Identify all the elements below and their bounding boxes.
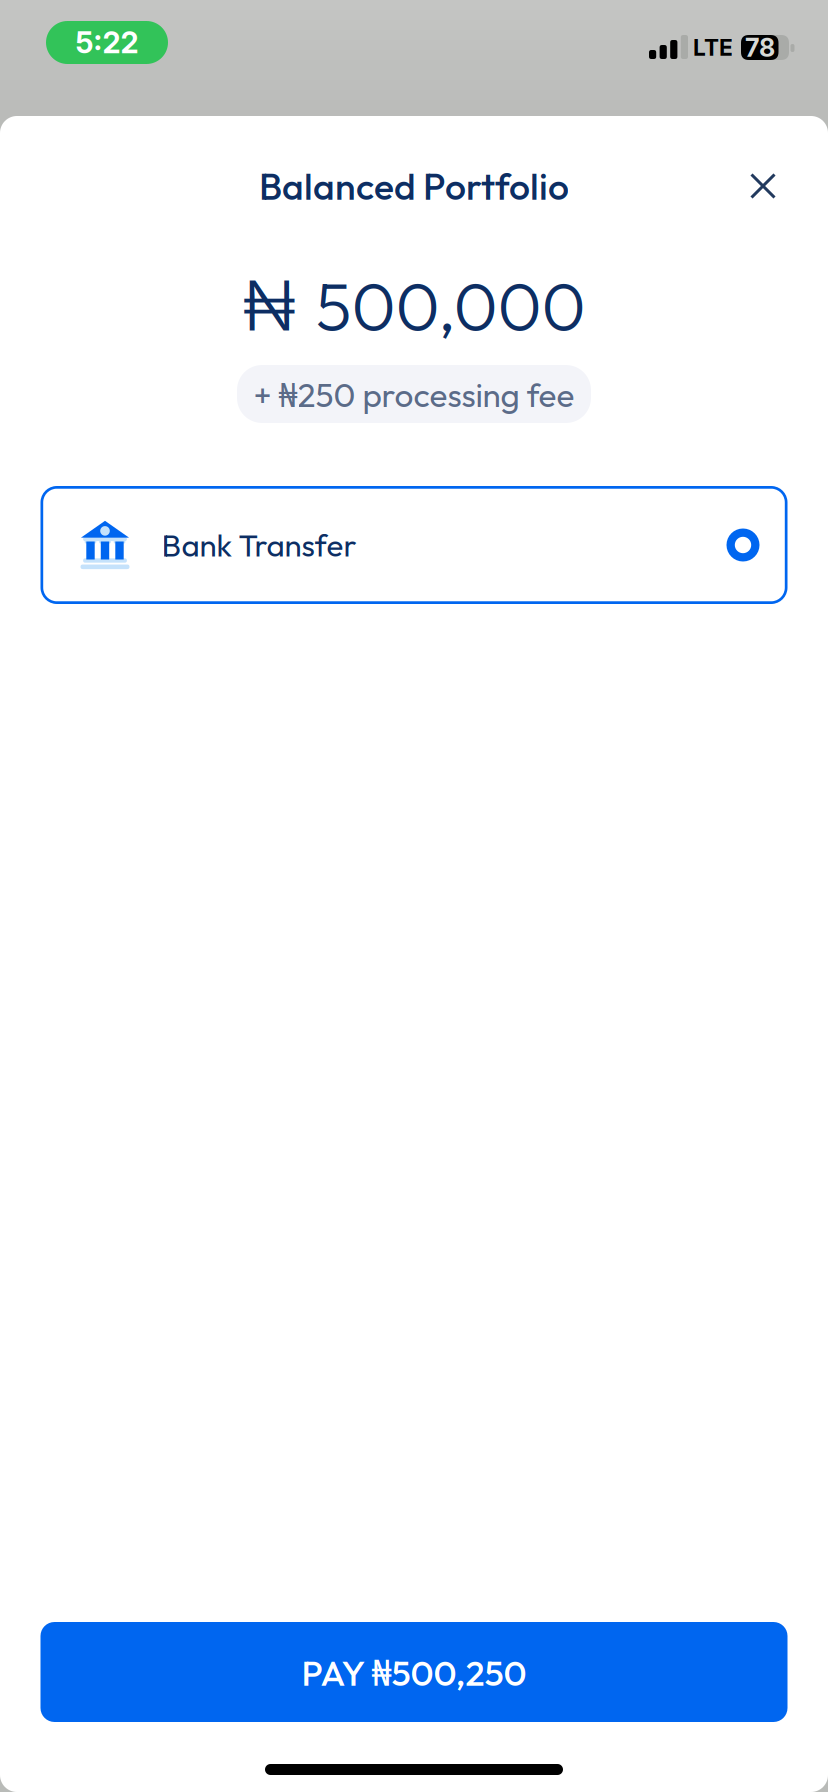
staticText: 500,000 bbox=[315, 263, 585, 348]
staticText: ₦ bbox=[242, 263, 296, 347]
staticText: + ₦250 processing fee bbox=[253, 371, 574, 417]
staticText: 78 bbox=[745, 32, 775, 63]
button[interactable]: PAY ₦500,250 bbox=[40, 1622, 787, 1722]
staticText: LTE bbox=[693, 34, 733, 61]
staticText: Balanced Portfolio bbox=[259, 162, 569, 209]
staticText: Bank Transfer bbox=[161, 525, 356, 565]
button[interactable]: Bank Transfer bbox=[40, 486, 787, 604]
staticText: 5:22 bbox=[75, 25, 138, 60]
staticText: PAY ₦500,250 bbox=[301, 1648, 526, 1696]
button[interactable]: Close bbox=[730, 153, 796, 219]
